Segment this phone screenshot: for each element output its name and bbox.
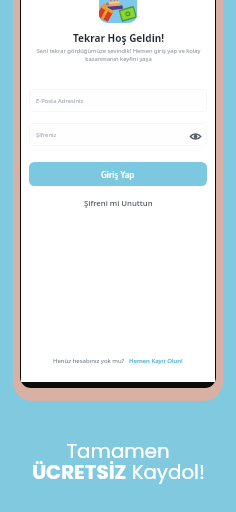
staticText: Henüz hesabınız yok mu?: [53, 357, 125, 365]
staticText: Giriş Yap: [101, 169, 135, 180]
button[interactable]: Hemen Kayıt Olun!: [129, 357, 183, 365]
staticText: E-Posta Adresiniz: [36, 97, 84, 105]
staticText: Seni tekrar gördüğümüze sevindik! Hemen …: [36, 47, 201, 63]
staticText: Tekrar Hoş Geldin!: [73, 31, 164, 45]
other: Şifreyi göster: [189, 130, 202, 143]
button[interactable]: E-Posta Adresiniz: [29, 89, 207, 112]
button[interactable]: Giriş Yap: [29, 162, 207, 186]
staticText: Hemen Kayıt Olun!: [129, 357, 183, 365]
staticText: Şifreni mi Unuttun: [84, 198, 153, 209]
staticText: Şifreniz: [36, 131, 57, 139]
button[interactable]: Şifreniz: [29, 123, 207, 146]
staticText: Tamamen: [66, 437, 170, 465]
button[interactable]: Şifreni mi Unuttun: [78, 195, 159, 212]
staticText: ÜCRETSİZ Kaydol!: [32, 458, 205, 486]
